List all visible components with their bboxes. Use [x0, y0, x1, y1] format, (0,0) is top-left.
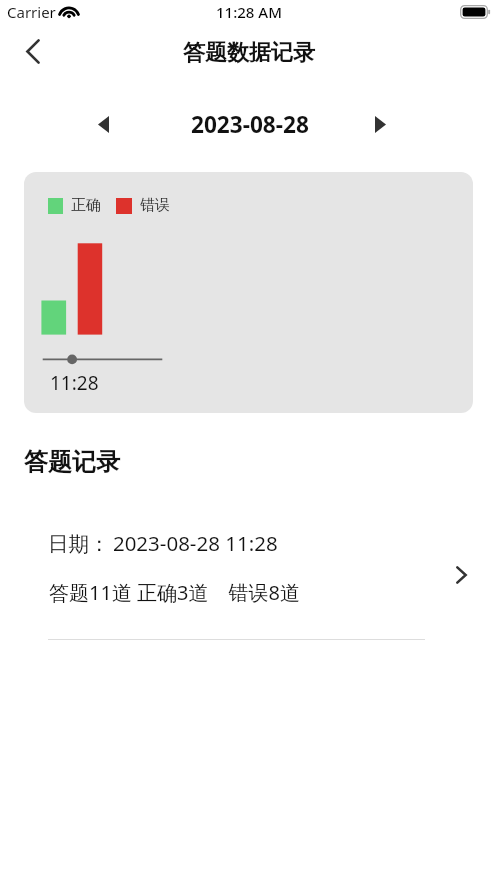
button[interactable]: Back — [9, 27, 57, 75]
staticText: 答题记录 — [24, 447, 120, 477]
staticText: 错误 — [140, 196, 170, 215]
staticText: 11:28 AM — [216, 2, 282, 22]
other: View detail — [450, 564, 472, 586]
staticText: 日期： 2023-08-28 11:28 — [48, 529, 278, 557]
staticText: 2023-08-28 — [191, 109, 309, 140]
button[interactable]: Previous day — [85, 106, 121, 142]
button[interactable]: 日期： 2023-08-28 11:28 — [0, 518, 497, 618]
staticText: 答题11道 正确3道 错误8道 — [49, 579, 300, 606]
staticText: Carrier — [7, 2, 56, 22]
staticText: 11:28 — [50, 370, 99, 396]
staticText: 答题数据记录 — [183, 39, 315, 67]
button[interactable]: Next day — [362, 106, 398, 142]
staticText: 正确 — [71, 196, 101, 215]
